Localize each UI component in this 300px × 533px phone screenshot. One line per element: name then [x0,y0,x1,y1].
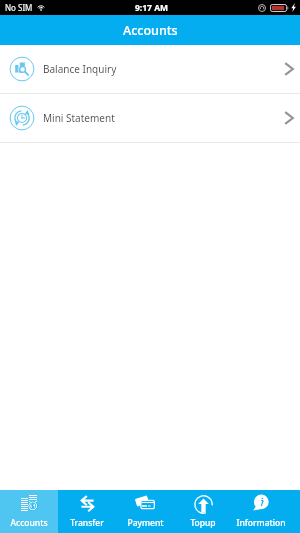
staticText: Topup [190,517,216,529]
button[interactable]: Balance Inquiry [0,45,300,93]
staticText: No SIM [5,2,33,13]
staticText: 9:17 AM [135,2,169,14]
staticText: Accounts [10,517,48,529]
staticText: Balance Inquiry [43,62,117,76]
button[interactable]: Topup [174,490,232,533]
button[interactable]: Payment [116,490,174,533]
button[interactable]: Information [232,490,290,533]
staticText: Information [236,517,286,529]
button[interactable]: Transfer [58,490,116,533]
staticText: Transfer [70,517,104,529]
staticText: Accounts [123,22,178,39]
staticText: Payment [127,517,164,529]
button[interactable]: Mini Statement [0,94,300,142]
staticText: Mini Statement [43,111,115,125]
button[interactable]: Accounts [0,490,58,533]
